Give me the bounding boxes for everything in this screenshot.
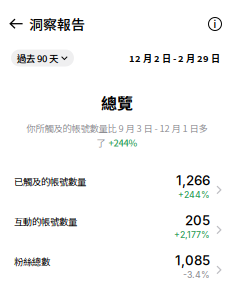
staticText: 1,085	[175, 252, 210, 268]
staticText: 已觸及的帳號數量	[14, 174, 86, 188]
button[interactable]: 粉絲總數	[0, 246, 234, 286]
staticText: 12 月 2 日 - 2 月 29 日	[129, 51, 220, 65]
button[interactable]: Back	[0, 5, 29, 43]
staticText: 了	[96, 136, 105, 149]
staticText: +244%	[108, 136, 137, 149]
staticText: +2,177%	[174, 229, 210, 240]
staticText: -3.4%	[183, 269, 210, 280]
staticText: 205	[185, 212, 210, 228]
button[interactable]: 過去 90 天	[11, 49, 74, 66]
staticText: 粉絲總數	[14, 254, 50, 268]
staticText: 1,266	[176, 172, 210, 188]
button[interactable]: About insights	[198, 5, 234, 43]
staticText: 你所觸及的帳號數量比 9 月 3 日 - 12 月 1 日多	[26, 121, 207, 135]
staticText: 過去 90 天	[17, 51, 58, 65]
button[interactable]: 互動的帳號數量	[0, 206, 234, 246]
button[interactable]: 已觸及的帳號數量	[0, 166, 234, 206]
staticText: 總覽	[101, 91, 133, 114]
staticText: 洞察報告	[29, 14, 85, 34]
staticText: 互動的帳號數量	[14, 214, 77, 228]
staticText: i	[213, 17, 216, 30]
staticText: +244%	[178, 189, 210, 200]
